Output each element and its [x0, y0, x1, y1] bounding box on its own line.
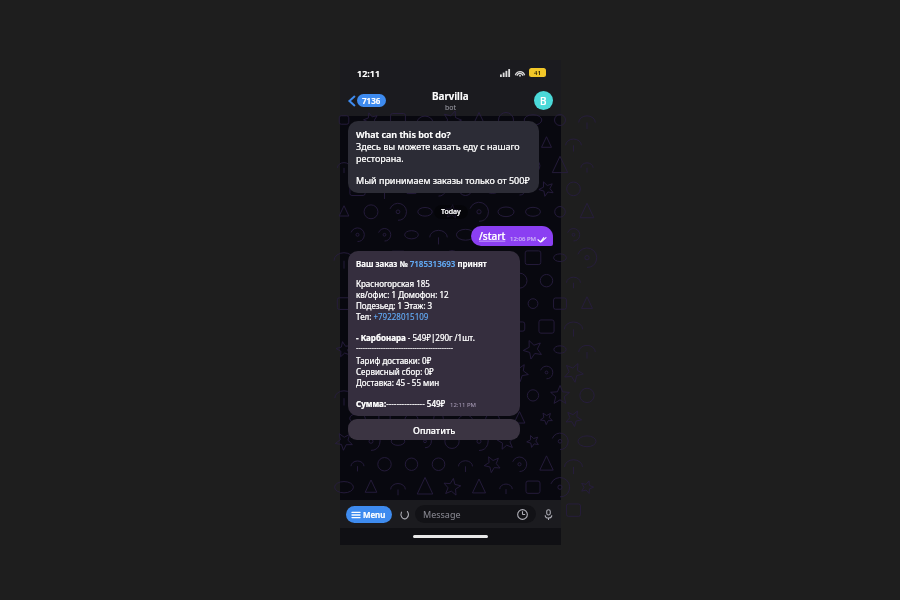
staticText: 41: [534, 69, 541, 77]
button[interactable]: /start: [471, 226, 553, 246]
staticText: - Карбонара - 549₽|290г /1шт.: [356, 332, 475, 343]
button[interactable]: Attach: [397, 507, 411, 521]
staticText: Сервисный сбор: 0₽: [356, 366, 434, 377]
staticText: 12:11: [357, 67, 381, 79]
button[interactable]: Voice message: [541, 507, 555, 521]
staticText: 7136: [362, 95, 381, 106]
staticText: B: [540, 94, 547, 108]
staticText: Доставка: 45 - 55 мин: [356, 377, 440, 388]
button[interactable]: Message: [415, 505, 536, 523]
staticText: Сумма:--------------- 549₽: [356, 398, 446, 409]
button[interactable]: What can this bot do?: [348, 121, 539, 193]
staticText: 12:06 PM: [510, 235, 536, 243]
staticText: Message: [423, 508, 461, 520]
other: Schedule: [517, 509, 528, 520]
button[interactable]: Barvilla: [432, 89, 469, 113]
staticText: Оплатить: [413, 424, 456, 436]
staticText: Ваш заказ № 7185313693 принят: [356, 258, 487, 269]
staticText: Мый принимаем заказы только от 500₽: [356, 174, 530, 186]
staticText: Barvilla: [432, 89, 469, 103]
button[interactable]: Back: [346, 92, 388, 109]
staticText: Тел: +79228015109: [356, 311, 429, 322]
staticText: Menu: [363, 509, 386, 520]
staticText: ----------------------------------------…: [356, 343, 453, 353]
staticText: Подезьед: 1 Этаж: 3: [356, 300, 433, 311]
button[interactable]: Menu: [346, 506, 392, 523]
staticText: Today: [441, 207, 461, 217]
staticText: Красногорская 185: [356, 278, 430, 289]
staticText: /start: [479, 229, 506, 243]
staticText: ресторана.: [356, 152, 404, 164]
staticText: Здесь вы можете казать еду с нашаго: [356, 140, 520, 152]
staticText: bot: [445, 103, 457, 113]
staticText: Тариф доставки: 0₽: [356, 355, 432, 366]
staticText: What can this bot do?: [356, 128, 451, 140]
staticText: кв/офис: 1 Домофон: 12: [356, 289, 449, 300]
button[interactable]: Ваш заказ № 7185313693 принят: [348, 251, 520, 416]
staticText: 12:11 PM: [450, 401, 476, 409]
button[interactable]: Profile: [534, 91, 553, 110]
button[interactable]: Оплатить: [348, 419, 520, 440]
